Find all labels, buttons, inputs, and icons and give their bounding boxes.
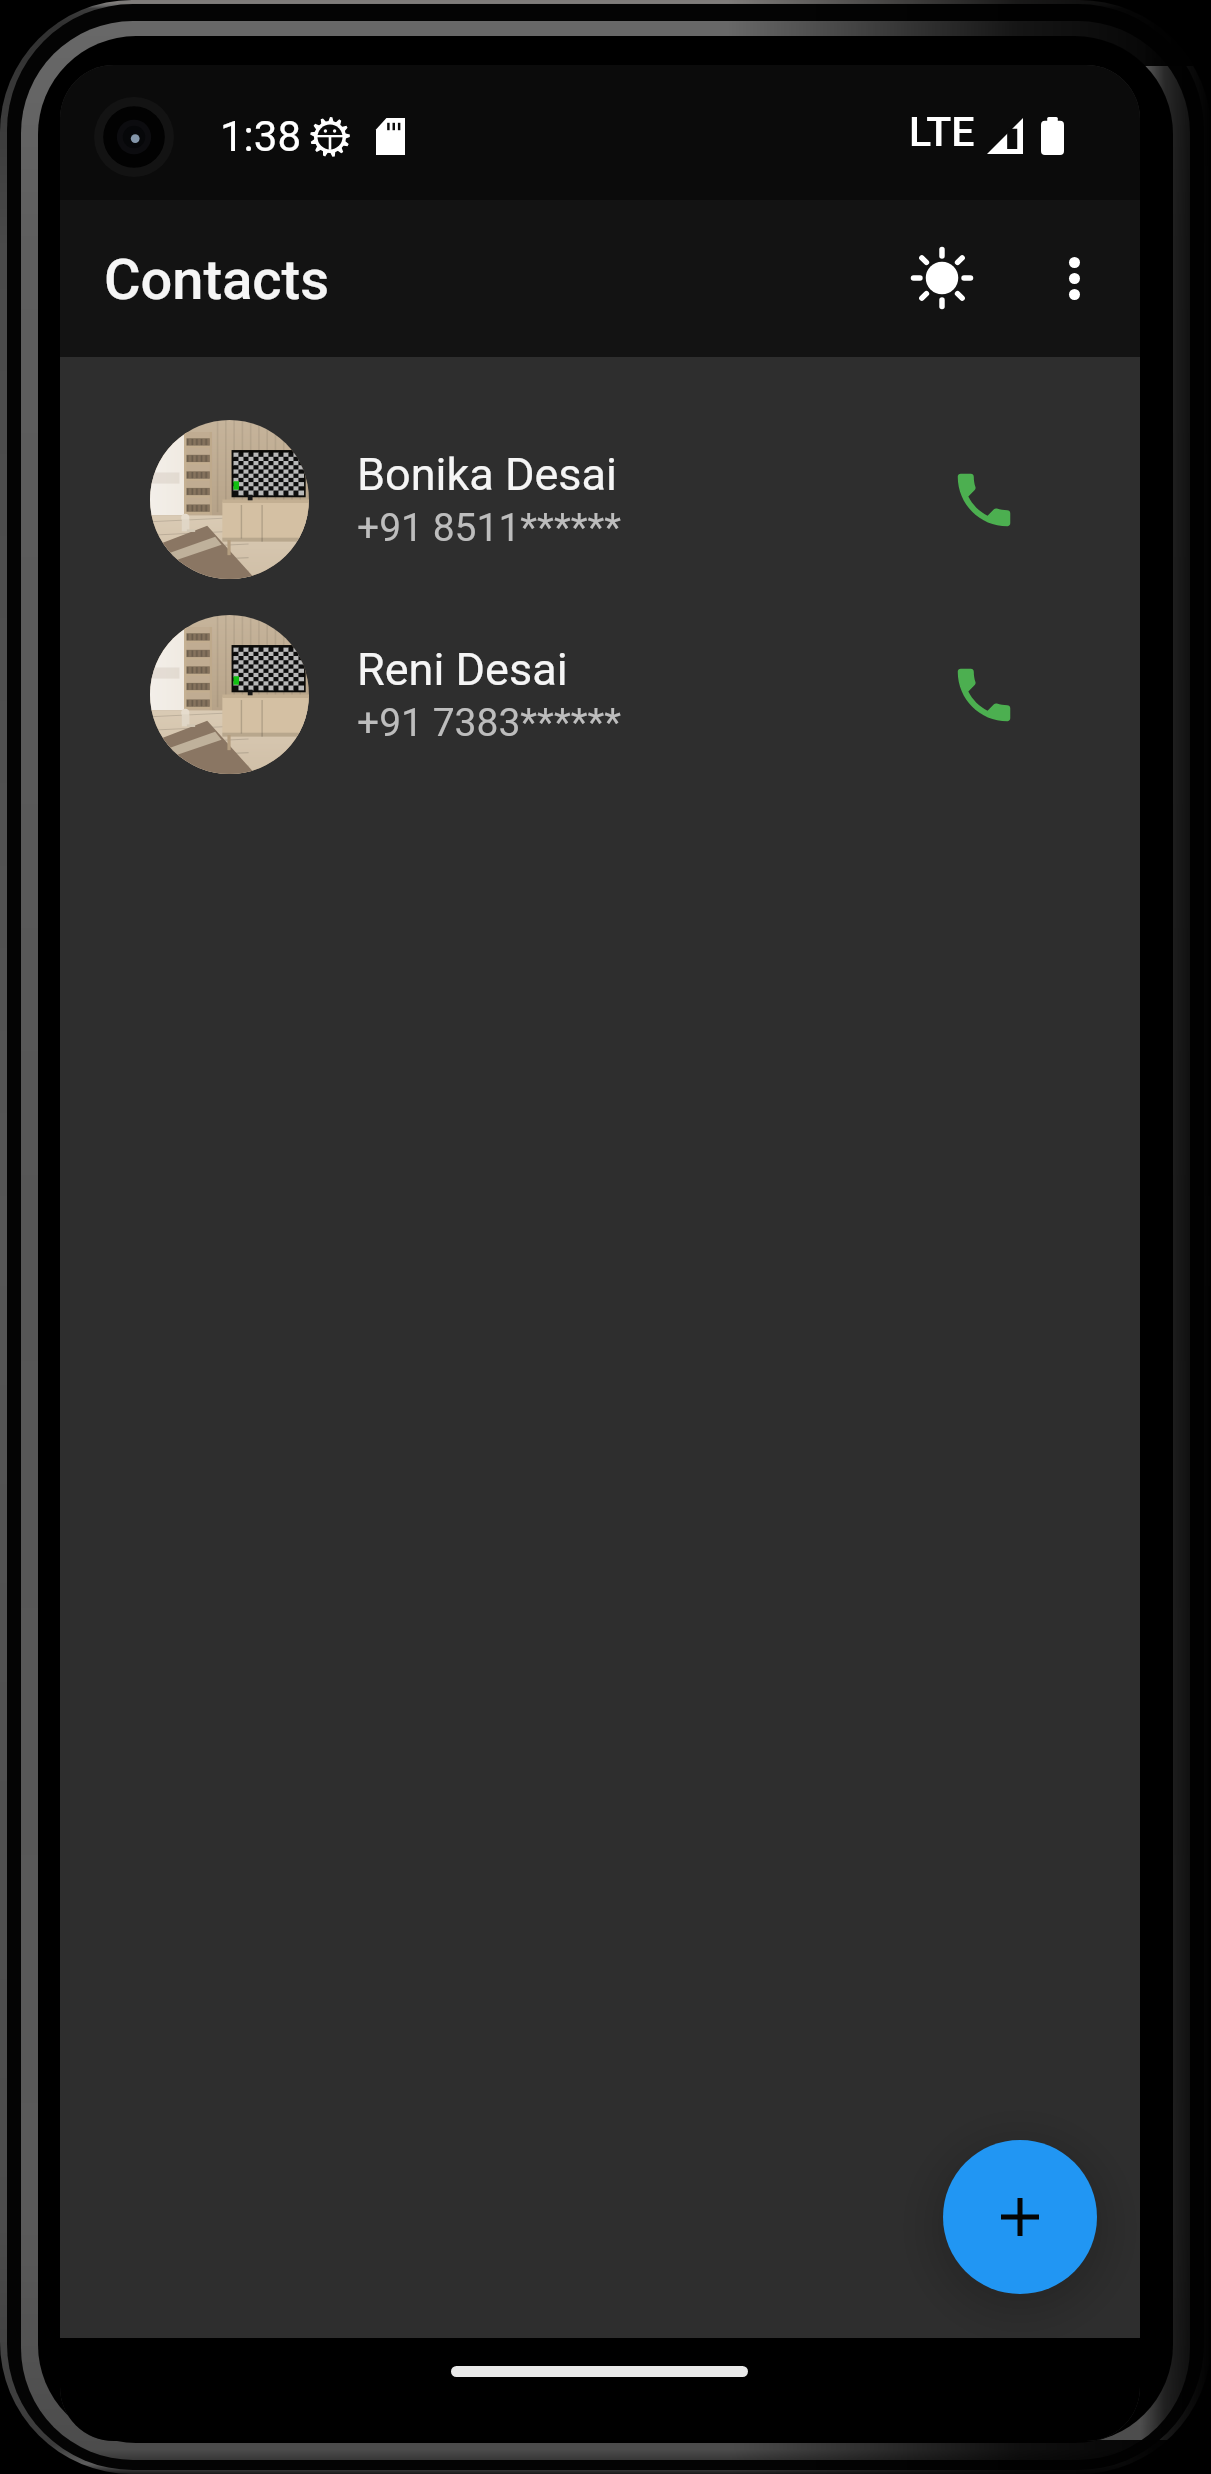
button[interactable]: Call Reni Desai xyxy=(929,640,1039,750)
button[interactable]: Call Bonika Desai xyxy=(929,445,1039,555)
staticText: Reni Desai xyxy=(357,643,568,696)
button[interactable]: Toggle theme xyxy=(888,224,996,332)
staticText: Bonika Desai xyxy=(357,448,617,501)
staticText: +91 7383****** xyxy=(357,700,622,746)
staticText: LTE xyxy=(909,108,975,156)
staticText: 1:38 xyxy=(220,112,301,161)
button[interactable]: Home xyxy=(451,2366,748,2377)
button[interactable]: Bonika Desai xyxy=(60,402,1140,597)
button[interactable]: Add contact xyxy=(943,2140,1097,2294)
button[interactable]: Reni Desai xyxy=(60,597,1140,792)
staticText: Contacts xyxy=(104,247,330,313)
button[interactable]: More options xyxy=(1020,224,1128,332)
staticText: +91 8511****** xyxy=(357,505,622,551)
